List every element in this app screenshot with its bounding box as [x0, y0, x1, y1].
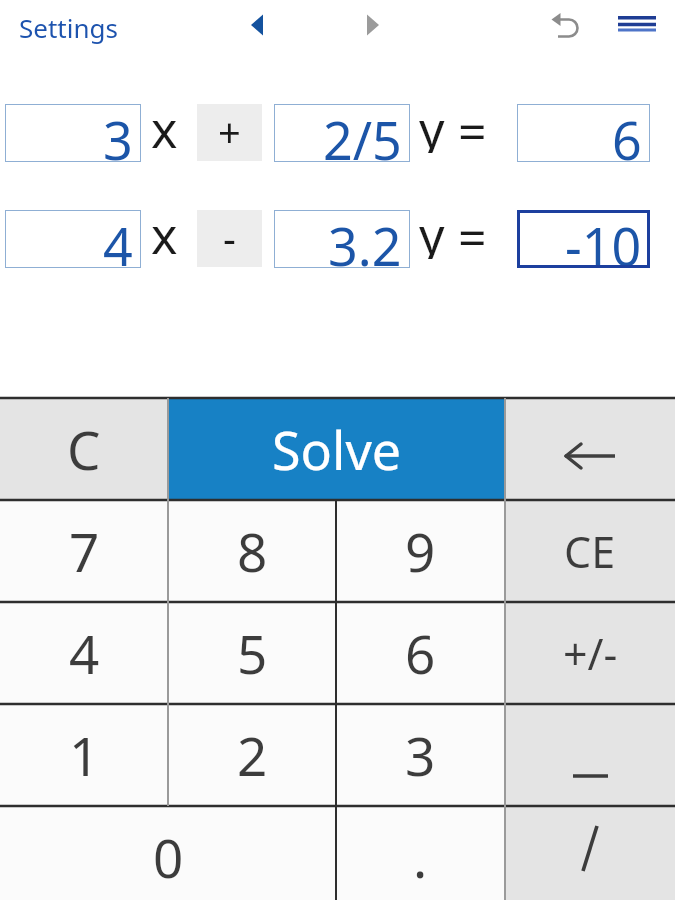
button[interactable]: 6 [336, 602, 505, 704]
staticText: y [419, 95, 445, 153]
staticText: x [151, 201, 178, 259]
staticText: 6 [405, 617, 436, 689]
staticText: 3.2 [328, 210, 402, 268]
staticText: 4 [103, 210, 133, 268]
button[interactable]: Settings [16, 10, 120, 44]
button[interactable]: 3 [336, 704, 505, 806]
button[interactable]: 6 [517, 104, 650, 162]
button[interactable] [0, 398, 168, 500]
button[interactable]: Solve [168, 398, 505, 500]
staticText: -10 [565, 210, 642, 268]
staticText: 5 [237, 617, 268, 689]
button[interactable]: -10 [517, 210, 650, 268]
button[interactable]: . [336, 806, 505, 900]
button[interactable]: 5 [168, 602, 336, 704]
button[interactable]: 7 [0, 500, 168, 602]
staticText: - [223, 210, 236, 264]
staticText: 7 [69, 515, 100, 587]
button[interactable] [353, 5, 393, 45]
button[interactable]: + [197, 104, 262, 161]
button[interactable]: 2 [168, 704, 336, 806]
staticText: 6 [612, 104, 642, 162]
button[interactable] [505, 806, 675, 900]
staticText: + [218, 104, 241, 158]
staticText: Solve [272, 414, 402, 485]
button[interactable] [237, 5, 277, 45]
button[interactable]: 8 [168, 500, 336, 602]
button[interactable]: CE [505, 500, 675, 602]
staticText: 1 [69, 719, 100, 791]
button[interactable]: - [197, 210, 262, 267]
staticText: = [458, 203, 487, 261]
staticText: 2 [237, 719, 268, 791]
staticText: 8 [237, 515, 268, 587]
staticText: C [67, 413, 101, 485]
staticText: 4 [69, 617, 100, 689]
button[interactable] [547, 4, 587, 44]
staticText: 2/5 [323, 104, 402, 162]
staticText: = [458, 97, 487, 155]
button[interactable] [612, 4, 662, 44]
staticText: 9 [405, 515, 436, 587]
button[interactable]: C [0, 398, 168, 500]
button[interactable]: 1 [0, 704, 168, 806]
staticText: x [151, 95, 178, 153]
button[interactable]: 3 [5, 104, 141, 162]
button[interactable]: 9 [336, 500, 505, 602]
button[interactable]: +/- [505, 602, 675, 704]
staticText: +/- [563, 624, 618, 683]
button[interactable] [505, 398, 675, 500]
staticText: 3 [103, 104, 133, 162]
button[interactable]: 4 [5, 210, 141, 268]
button[interactable]: 3.2 [274, 210, 410, 268]
staticText: . [413, 821, 428, 893]
button[interactable]: 0 [0, 806, 336, 900]
button[interactable]: 2/5 [274, 104, 410, 162]
staticText: CE [564, 522, 616, 581]
staticText: 0 [153, 821, 184, 893]
staticText: Settings [19, 10, 118, 44]
button[interactable] [505, 704, 675, 806]
button[interactable]: 4 [0, 602, 168, 704]
staticText: y [419, 201, 445, 259]
staticText: 3 [405, 719, 436, 791]
